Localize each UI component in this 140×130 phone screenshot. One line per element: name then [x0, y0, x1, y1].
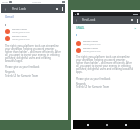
button[interactable]: Gmail	[5, 15, 14, 19]
button[interactable]: Reply	[133, 26, 137, 30]
button[interactable]: Recent apps	[121, 120, 130, 129]
staticText: Telerik UI for Xamarin Team	[76, 85, 110, 88]
button[interactable]: Archive	[53, 5, 60, 12]
staticText: sender@telerik.com	[12, 38, 30, 41]
button[interactable]: GMAIL	[76, 26, 85, 30]
staticText: Sender Name	[83, 40, 98, 43]
button[interactable]: Sender Name	[76, 40, 136, 46]
staticText: Sender Name	[12, 35, 27, 38]
button[interactable]: Back	[1, 5, 9, 13]
staticText: Please give us your feedback	[5, 65, 40, 68]
button[interactable]: Sender Name	[5, 28, 63, 34]
staticText: Sender Name	[83, 47, 98, 50]
button[interactable]: Sender Name	[76, 47, 136, 53]
button[interactable]: Sender Name	[5, 35, 63, 41]
staticText: Please give us your feedback	[76, 77, 111, 80]
staticText: sender@telerik.com	[12, 31, 30, 34]
button[interactable]: More options	[135, 18, 140, 23]
staticText: Telerik UI for Xamarin Team	[5, 74, 39, 77]
staticText: sender@telerik.com	[83, 50, 101, 53]
staticText: The right cross-platform tools can strea…	[5, 44, 62, 62]
staticText: 12:00 PM	[32, 1, 42, 4]
button[interactable]: Archive	[129, 17, 135, 23]
staticText: Gmail	[2, 1, 8, 4]
button[interactable]: Home	[102, 120, 111, 129]
staticText: sender@telerik.com	[83, 43, 101, 46]
staticText: Regards,	[5, 70, 16, 73]
staticText: First Look	[82, 18, 96, 22]
staticText: Regards,	[76, 82, 87, 85]
button[interactable]: More options	[60, 6, 65, 11]
button[interactable]: Back	[73, 17, 80, 24]
staticText: First Look	[12, 7, 26, 11]
staticText: Sender Name	[12, 28, 27, 31]
button[interactable]: Back	[83, 120, 92, 129]
staticText: The right cross-platform tools can strea…	[76, 55, 134, 73]
